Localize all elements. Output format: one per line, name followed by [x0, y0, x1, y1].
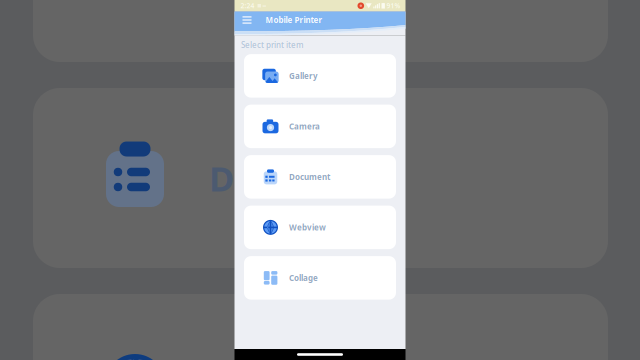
staticText: Mobile Printer [265, 15, 322, 25]
button[interactable]: Camera [244, 105, 396, 148]
button[interactable]: Webview [244, 206, 396, 249]
staticText: Gallery [289, 71, 318, 81]
staticText: Document [209, 155, 390, 201]
button[interactable]: Menu [234, 13, 251, 27]
staticText: Select print item [241, 39, 304, 50]
staticText: 2:24 [240, 1, 254, 10]
staticText: Camera [289, 121, 320, 132]
button[interactable]: Gallery [244, 54, 396, 98]
button[interactable]: Collage [244, 256, 396, 300]
button[interactable]: Document [244, 155, 396, 199]
staticText: Collage [289, 273, 318, 283]
staticText: Webview [289, 222, 326, 233]
staticText: 91% [386, 1, 400, 10]
staticText: Document [289, 172, 330, 182]
